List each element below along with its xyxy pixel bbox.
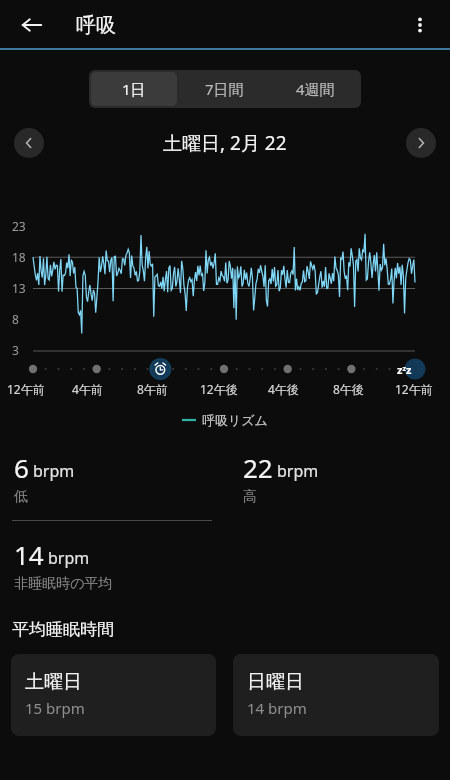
staticText: 15 brpm — [25, 698, 85, 718]
button[interactable]: More options — [398, 3, 442, 47]
staticText: 8午前 — [137, 381, 168, 397]
staticText: 3 — [12, 342, 19, 358]
staticText: brpm — [277, 460, 319, 482]
button[interactable]: 土曜日 — [11, 654, 216, 736]
staticText: 18 — [12, 249, 26, 265]
button[interactable]: Back — [8, 1, 56, 49]
button[interactable]: 日曜日 — [233, 654, 439, 736]
staticText: 6 — [14, 450, 29, 485]
staticText: 土曜日, 2月 22 — [163, 130, 287, 156]
staticText: 13 — [12, 280, 26, 296]
button[interactable]: Next day — [406, 128, 436, 158]
staticText: 4午前 — [72, 381, 103, 397]
staticText: 12午前 — [7, 381, 45, 397]
staticText: 非睡眠時の平均 — [14, 575, 113, 593]
staticText: 23 — [12, 218, 26, 234]
staticText: 22 — [243, 450, 273, 485]
staticText: 12午後 — [200, 381, 238, 397]
staticText: 7日間 — [205, 79, 244, 99]
staticText: 12午前 — [395, 381, 433, 397]
staticText: 平均睡眠時間 — [12, 619, 114, 640]
staticText: 低 — [14, 488, 28, 506]
button[interactable]: 1日 — [91, 72, 177, 106]
staticText: 高 — [243, 488, 257, 506]
staticText: 呼吸リズム — [202, 412, 268, 428]
staticText: 呼吸 — [76, 13, 116, 38]
staticText: 8 — [12, 311, 19, 327]
staticText: 14 brpm — [247, 698, 307, 718]
staticText: 4週間 — [296, 79, 335, 99]
button[interactable]: 7日間 — [181, 72, 268, 106]
staticText: 土曜日 — [25, 670, 82, 694]
staticText: 4午後 — [268, 381, 299, 397]
staticText: 1日 — [122, 79, 146, 99]
button[interactable]: Previous day — [14, 128, 44, 158]
staticText: brpm — [48, 547, 90, 569]
staticText: zᶻz — [397, 362, 412, 377]
staticText: 日曜日 — [247, 670, 304, 694]
staticText: brpm — [33, 460, 75, 482]
staticText: 14 — [14, 537, 44, 572]
button[interactable]: 4週間 — [272, 72, 359, 106]
staticText: 8午後 — [333, 381, 364, 397]
